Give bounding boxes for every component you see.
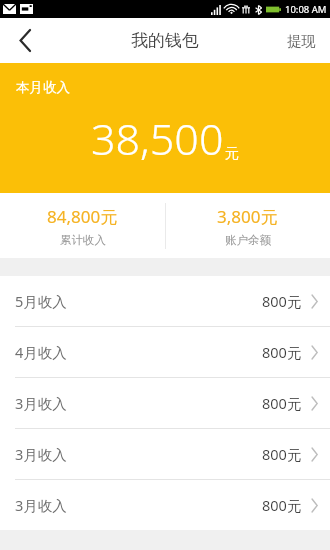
staticText: 10:08 AM — [285, 3, 327, 16]
staticText: 账户余额 — [225, 233, 271, 247]
staticText: 我的钱包 — [131, 30, 199, 51]
staticText: 累计收入 — [60, 233, 106, 247]
button[interactable]: 3,800元 — [165, 193, 330, 258]
button[interactable]: 3月收入 — [0, 429, 330, 479]
staticText: 800元 — [262, 342, 302, 362]
staticText: 84,800元 — [47, 205, 118, 228]
button[interactable]: Back — [0, 18, 50, 63]
staticText: 800元 — [262, 495, 302, 515]
staticText: 38,500 — [91, 109, 224, 168]
staticText: 本月收入 — [16, 79, 70, 96]
staticText: 元 — [225, 145, 239, 163]
staticText: 3月收入 — [15, 495, 67, 515]
staticText: 提现 — [287, 32, 316, 50]
staticText: 5月收入 — [15, 291, 67, 311]
staticText: 3月收入 — [15, 444, 67, 464]
staticText: 800元 — [262, 393, 302, 413]
staticText: 3月收入 — [15, 393, 67, 413]
staticText: 4月收入 — [15, 342, 67, 362]
staticText: 800元 — [262, 444, 302, 464]
button[interactable]: 提现 — [273, 18, 330, 63]
button[interactable]: 3月收入 — [0, 480, 330, 530]
button[interactable]: 3月收入 — [0, 378, 330, 428]
staticText: 3,800元 — [217, 205, 278, 228]
button[interactable]: 4月收入 — [0, 327, 330, 377]
button[interactable]: 5月收入 — [0, 276, 330, 326]
button[interactable]: 84,800元 — [0, 193, 165, 258]
staticText: 800元 — [262, 291, 302, 311]
